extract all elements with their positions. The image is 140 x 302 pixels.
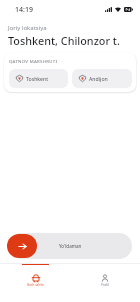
staticText: Yo'ldaman: [59, 243, 82, 249]
button[interactable]: Yo'ldaman: [8, 233, 132, 259]
button[interactable]: Toshkent: [9, 69, 68, 88]
button[interactable]: Slide to start trip: [7, 234, 37, 258]
button[interactable]: Andijon: [72, 69, 132, 88]
staticText: Toshkent, Chilonzor t.: [8, 33, 120, 48]
staticText: Toshkent: [26, 75, 49, 82]
button[interactable]: Profil: [70, 264, 140, 277]
button[interactable]: Bosh sahifa: [0, 264, 70, 277]
staticText: Joriy lokatsiya: [8, 24, 47, 32]
staticText: 14:19: [15, 5, 33, 15]
staticText: Profil: [101, 283, 109, 287]
staticText: QATNOV MARSHRUTI: [9, 58, 58, 64]
staticText: Andijon: [89, 75, 108, 82]
staticText: Bosh sahifa: [27, 283, 44, 287]
